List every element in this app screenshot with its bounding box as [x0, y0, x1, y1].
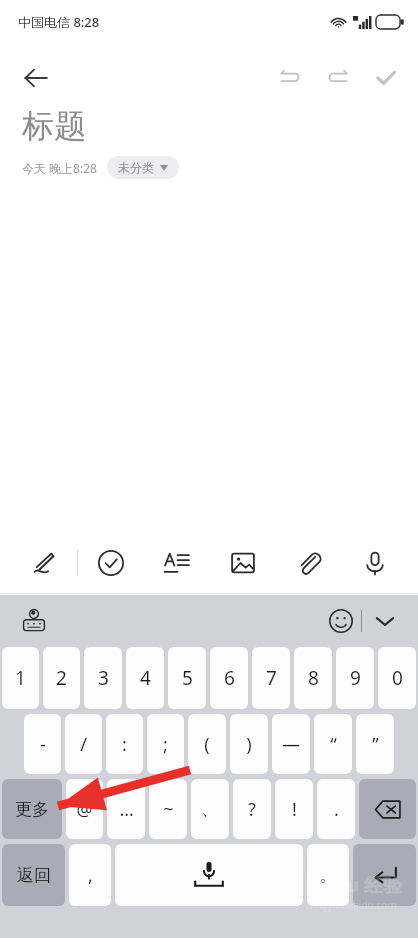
staticText: 2 [56, 665, 67, 691]
button[interactable]: Attachment [276, 532, 342, 594]
button[interactable]: 。 [307, 844, 349, 906]
staticText: ( [204, 732, 210, 757]
staticText: 5 [182, 665, 193, 691]
staticText: ? [248, 797, 256, 822]
staticText: , [88, 863, 93, 888]
staticText: 。 [319, 864, 337, 887]
button[interactable]: / [65, 714, 102, 774]
button[interactable]: , [69, 844, 111, 906]
button[interactable]: 未分类 [107, 156, 179, 179]
staticText: 返回 [17, 865, 51, 886]
staticText: jingyan.baidu.com [310, 898, 397, 912]
staticText: - [40, 732, 46, 757]
staticText: … [119, 797, 134, 822]
button[interactable]: Backspace [359, 779, 416, 839]
button[interactable]: ) [230, 714, 268, 774]
staticText: 6 [224, 665, 235, 691]
button[interactable]: ( [188, 714, 226, 774]
staticText: Baidu 经验 [305, 872, 402, 898]
staticText: 7 [266, 665, 277, 691]
button[interactable]: @ [66, 779, 103, 839]
button[interactable]: ; [147, 714, 184, 774]
staticText: @ [76, 797, 93, 822]
staticText: — [282, 732, 300, 757]
staticText: ! [292, 797, 297, 822]
button[interactable]: Redo [314, 54, 362, 102]
button[interactable]: Back [12, 54, 60, 102]
button[interactable]: Image [210, 532, 276, 594]
button[interactable]: Input method [14, 601, 54, 641]
button[interactable]: 3 [84, 647, 122, 709]
staticText: : [122, 732, 127, 757]
button[interactable]: — [272, 714, 310, 774]
staticText: 3 [98, 665, 109, 691]
staticText: 标题 [22, 106, 86, 146]
button[interactable]: Checklist [78, 532, 144, 594]
button[interactable]: . [317, 779, 355, 839]
button[interactable]: 5 [168, 647, 206, 709]
button[interactable]: Undo [266, 54, 314, 102]
button[interactable]: 6 [210, 647, 248, 709]
button[interactable]: ? [233, 779, 271, 839]
staticText: 1 [15, 665, 26, 691]
staticText: 今天 晚上8:28 [22, 160, 97, 176]
staticText: . [334, 797, 339, 822]
button[interactable]: 1 [2, 647, 39, 709]
button[interactable]: Emoji [321, 601, 361, 641]
staticText: 更多 [15, 799, 49, 820]
button[interactable]: ~ [149, 779, 187, 839]
staticText: / [80, 732, 87, 757]
staticText: ; [163, 732, 168, 757]
staticText: 8 [308, 665, 319, 691]
button[interactable]: 0 [378, 647, 416, 709]
button[interactable]: Text format [144, 532, 210, 594]
button[interactable]: 4 [126, 647, 164, 709]
button[interactable]: … [107, 779, 145, 839]
staticText: 9 [350, 665, 361, 691]
button[interactable]: 返回 [2, 844, 65, 906]
button[interactable]: - [24, 714, 61, 774]
staticText: 4 [140, 665, 151, 691]
button[interactable]: 2 [43, 647, 80, 709]
button[interactable]: 更多 [2, 779, 62, 839]
button[interactable]: Space [115, 844, 303, 906]
button[interactable]: Done [362, 54, 410, 102]
button[interactable]: Enter [353, 844, 416, 906]
button[interactable]: Voice [342, 532, 408, 594]
staticText: 0 [392, 665, 403, 691]
button[interactable]: 9 [336, 647, 374, 709]
button[interactable]: “ [314, 714, 352, 774]
staticText: 、 [201, 798, 219, 821]
staticText: 中国电信 8:28 [18, 13, 100, 31]
staticText: 未分类 [118, 160, 154, 175]
button[interactable]: 7 [252, 647, 290, 709]
staticText: “ [330, 732, 337, 757]
button[interactable]: Hide keyboard [362, 598, 408, 644]
staticText: ) [246, 732, 252, 757]
button[interactable]: Handwriting [10, 532, 77, 594]
staticText: ~ [163, 797, 174, 822]
button[interactable]: 8 [294, 647, 332, 709]
button[interactable]: : [106, 714, 143, 774]
button[interactable]: 、 [191, 779, 229, 839]
staticText: ” [372, 732, 379, 757]
button[interactable]: ” [356, 714, 394, 774]
button[interactable]: ! [275, 779, 313, 839]
